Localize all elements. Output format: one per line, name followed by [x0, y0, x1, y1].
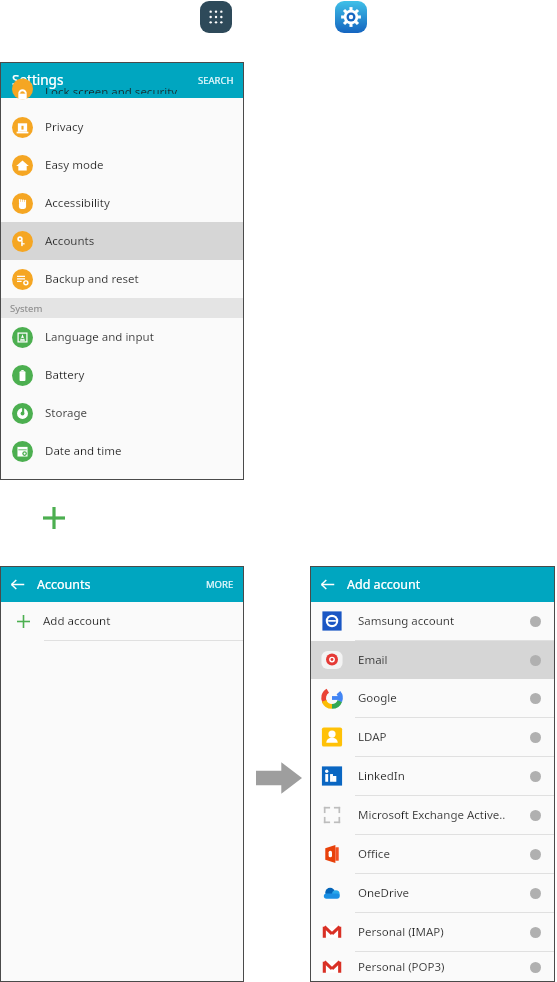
staticText: Personal (IMAP)	[358, 924, 444, 940]
staticText: Accessibility	[45, 195, 110, 211]
button[interactable]: Accessibility	[0, 184, 244, 222]
button[interactable]: Office	[310, 835, 555, 873]
button[interactable]: Samsung account	[310, 602, 555, 640]
staticText: Storage	[45, 405, 87, 421]
button[interactable]: LDAP	[310, 718, 555, 756]
button[interactable]: Back	[0, 566, 244, 602]
button[interactable]: Apps	[200, 1, 232, 33]
button[interactable]: Google	[310, 679, 555, 717]
button[interactable]: Date and time	[0, 432, 244, 470]
button[interactable]: Back	[310, 566, 555, 602]
staticText: Date and time	[45, 443, 122, 459]
button[interactable]: Easy mode	[0, 146, 244, 184]
button[interactable]: Back	[10, 577, 25, 592]
staticText: Google	[358, 690, 397, 706]
button[interactable]: Personal (IMAP)	[310, 913, 555, 951]
staticText: Battery	[45, 367, 85, 383]
staticText: Backup and reset	[45, 271, 139, 287]
staticText: Accounts	[37, 576, 91, 593]
button[interactable]: Accounts	[0, 222, 244, 260]
staticText: Samsung account	[358, 613, 455, 629]
staticText: OneDrive	[358, 885, 410, 901]
staticText: Add account	[347, 576, 421, 593]
button[interactable]: Next step	[256, 760, 302, 796]
button[interactable]: Microsoft Exchange Active..	[310, 796, 555, 834]
staticText: System	[10, 302, 43, 315]
staticText: Microsoft Exchange Active..	[358, 807, 506, 823]
staticText: Easy mode	[45, 157, 104, 173]
button[interactable]: Email	[310, 641, 555, 679]
button[interactable]: Settings	[0, 62, 244, 98]
button[interactable]: Privacy	[0, 108, 244, 146]
staticText: Lock screen and security	[45, 84, 178, 94]
button[interactable]: Language and input	[0, 318, 244, 356]
button[interactable]: Settings	[335, 1, 367, 33]
button[interactable]: Backup and reset	[0, 260, 244, 298]
staticText: LDAP	[358, 729, 387, 745]
staticText: MORE	[206, 578, 234, 591]
staticText: Add account	[43, 613, 111, 629]
button[interactable]: OneDrive	[310, 874, 555, 912]
staticText: Personal (POP3)	[358, 959, 445, 975]
button[interactable]: Personal (POP3)	[310, 952, 555, 982]
button[interactable]: Add account	[0, 602, 244, 640]
staticText: Privacy	[45, 119, 84, 135]
staticText: Office	[358, 846, 390, 862]
staticText: LinkedIn	[358, 768, 405, 784]
staticText: Settings	[12, 71, 64, 89]
button[interactable]: Battery	[0, 356, 244, 394]
button[interactable]: LinkedIn	[310, 757, 555, 795]
button[interactable]: Storage	[0, 394, 244, 432]
staticText: Language and input	[45, 329, 154, 345]
staticText: Email	[358, 652, 388, 668]
staticText: Accounts	[45, 233, 95, 249]
button[interactable]: Back	[320, 577, 335, 592]
staticText: SEARCH	[198, 74, 234, 87]
